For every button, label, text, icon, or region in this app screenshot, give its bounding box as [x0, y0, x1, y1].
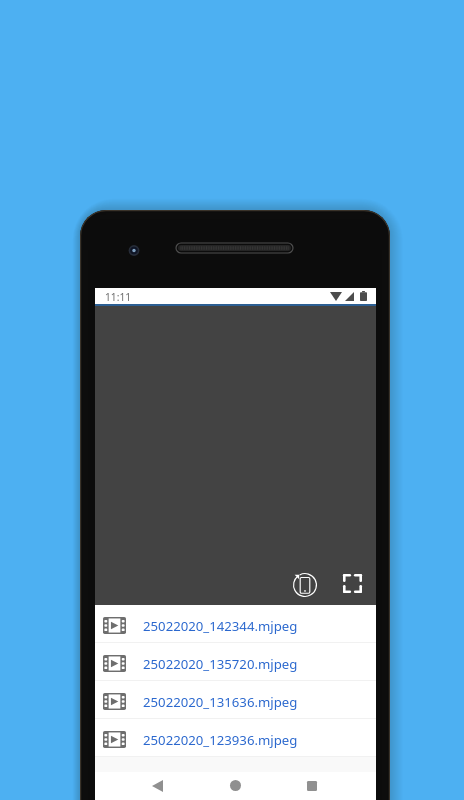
staticText: 11:11 — [105, 290, 132, 304]
staticText: 25022020_123936.mjpeg — [143, 731, 298, 749]
button[interactable]: Rotate screen — [292, 570, 318, 596]
staticText: 25022020_142344.mjpeg — [143, 617, 298, 635]
button[interactable]: Back — [139, 770, 175, 800]
button[interactable]: 25022020_135720.mjpeg — [95, 643, 376, 680]
button[interactable]: Recents — [294, 770, 330, 800]
button[interactable]: 25022020_123936.mjpeg — [95, 719, 376, 756]
button[interactable]: 25022020_131636.mjpeg — [95, 681, 376, 718]
staticText: 25022020_135720.mjpeg — [143, 655, 298, 673]
staticText: 25022020_131636.mjpeg — [143, 693, 298, 711]
button[interactable]: Home — [217, 770, 253, 800]
button[interactable]: Fullscreen — [339, 570, 365, 596]
button[interactable]: 25022020_142344.mjpeg — [95, 605, 376, 642]
